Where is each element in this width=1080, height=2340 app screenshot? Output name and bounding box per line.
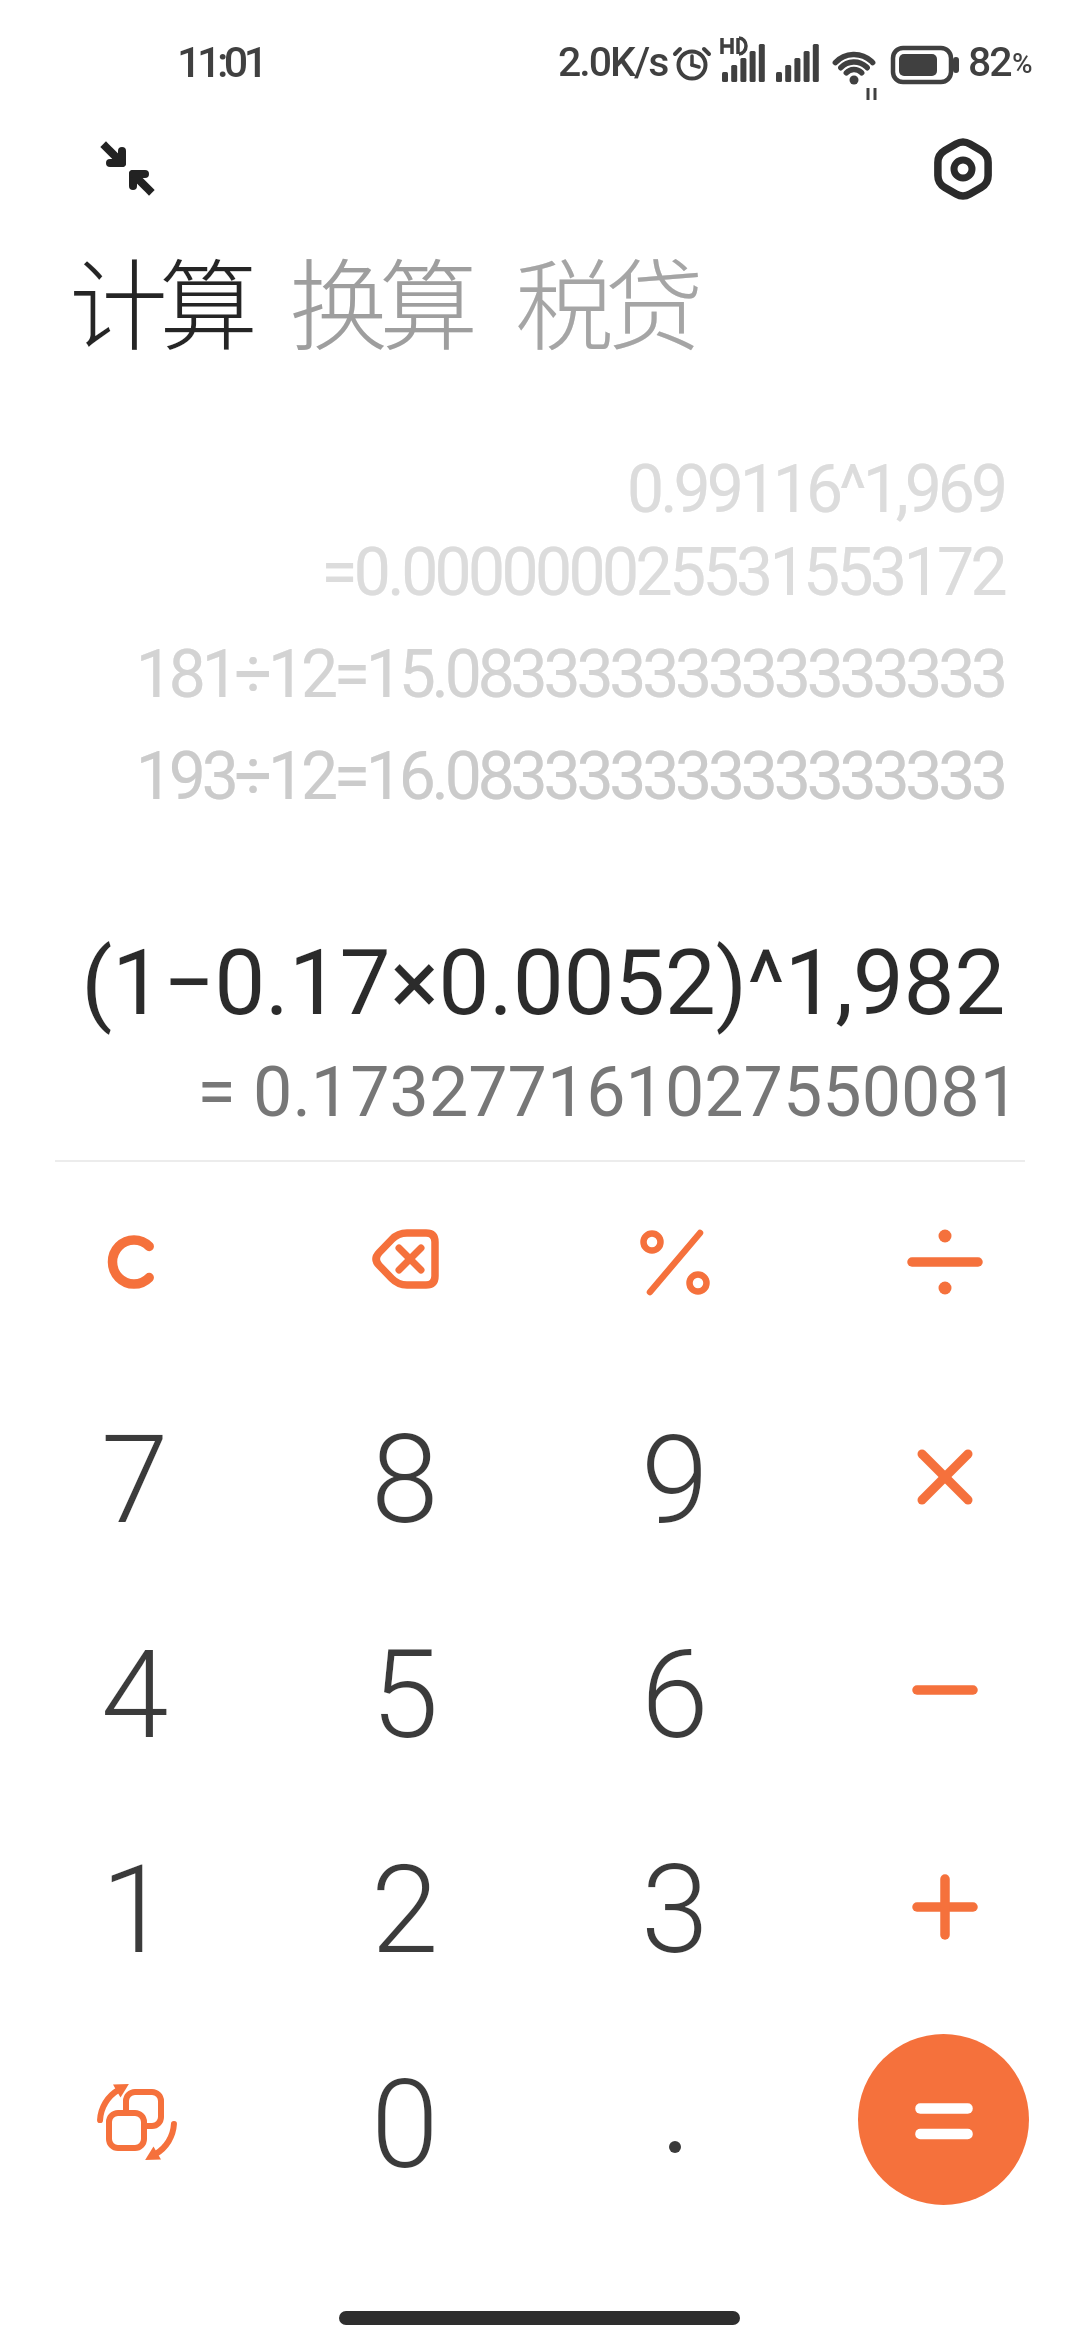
button[interactable] <box>929 135 997 203</box>
staticText: = 0.173277161027550081 <box>197 1051 1019 1133</box>
staticText: =0.000000025531553172 <box>321 534 1004 611</box>
button[interactable]: 税贷 <box>515 227 695 370</box>
staticText: 8 <box>371 1409 439 1552</box>
button[interactable] <box>540 2015 810 2229</box>
button[interactable] <box>810 1155 1080 1369</box>
button[interactable] <box>95 138 159 202</box>
staticText: 9 <box>641 1409 709 1552</box>
staticText: 0 <box>371 2054 439 2197</box>
button[interactable]: 0 <box>270 2018 540 2232</box>
button[interactable]: 9 <box>540 1373 810 1587</box>
button[interactable]: 3 <box>540 1803 810 2017</box>
staticText: 6 <box>641 1624 709 1767</box>
button[interactable]: 4 <box>0 1588 270 1802</box>
staticText: 3 <box>641 1839 709 1982</box>
button[interactable] <box>858 2034 1029 2205</box>
button[interactable]: 8 <box>270 1373 540 1587</box>
button[interactable]: 1 <box>0 1803 270 2017</box>
button[interactable]: 计算 <box>69 227 249 370</box>
staticText: 2 <box>371 1839 439 1982</box>
staticText: 11:01 <box>177 37 264 87</box>
button[interactable] <box>540 1155 810 1369</box>
button[interactable]: 7 <box>0 1373 270 1587</box>
button[interactable]: 换算 <box>289 227 469 370</box>
button[interactable] <box>810 1370 1080 1584</box>
staticText: 5 <box>371 1624 439 1767</box>
button[interactable] <box>0 2015 270 2229</box>
button[interactable] <box>270 1155 540 1369</box>
staticText: % <box>1012 47 1033 80</box>
staticText: 0.99116^1,969 <box>627 451 1004 528</box>
staticText: 193÷12=16.08333333333333333 <box>135 738 1004 815</box>
staticText: 7 <box>101 1409 169 1552</box>
staticText: (1−0.17×0.0052)^1,982 <box>81 930 1005 1037</box>
button[interactable]: 5 <box>270 1588 540 1802</box>
staticText: 2.0K/s <box>558 38 668 86</box>
button[interactable] <box>810 1585 1080 1799</box>
button[interactable] <box>0 1155 270 1369</box>
staticText: 181÷12=15.08333333333333333 <box>135 636 1004 713</box>
button[interactable]: 6 <box>540 1588 810 1802</box>
staticText: 82 <box>968 38 1011 86</box>
button[interactable] <box>810 1800 1080 2014</box>
staticText: 4 <box>101 1624 169 1767</box>
button[interactable]: 2 <box>270 1803 540 2017</box>
staticText: 1 <box>101 1839 169 1982</box>
